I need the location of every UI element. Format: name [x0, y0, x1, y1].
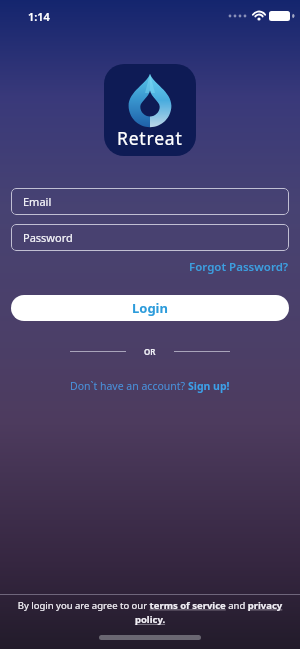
- button[interactable]: By login you are agree to our terms of s…: [14, 599, 286, 626]
- staticText: Don`t have an account?: [70, 379, 188, 393]
- button[interactable]: Forgot Password?: [189, 259, 289, 275]
- staticText: Login: [132, 299, 168, 317]
- button[interactable]: Login: [11, 295, 289, 321]
- staticText: Password: [23, 230, 73, 245]
- staticText: Email: [23, 194, 52, 209]
- button[interactable]: Email: [11, 188, 289, 215]
- staticText: Sign up!: [188, 379, 230, 393]
- button[interactable]: Don`t have an account?: [70, 379, 230, 393]
- staticText: OR: [144, 346, 156, 357]
- staticText: 1:14: [28, 9, 50, 24]
- staticText: Retreat: [117, 126, 183, 150]
- button[interactable]: Password: [11, 224, 289, 251]
